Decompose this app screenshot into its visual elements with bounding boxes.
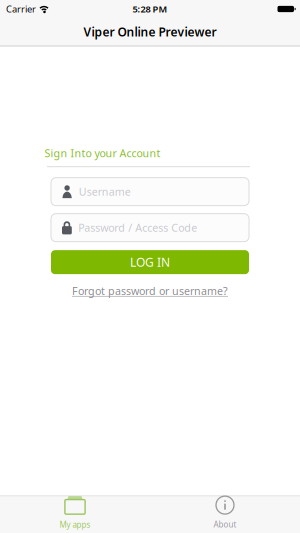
button[interactable]: My apps (0, 496, 150, 533)
button[interactable]: Username (51, 178, 249, 206)
staticText: Viper Online Previewer (83, 24, 216, 40)
staticText: Username (79, 185, 131, 199)
staticText: 5:28 PM (132, 3, 167, 15)
button[interactable]: Forgot password or username? (72, 284, 228, 298)
staticText: Sign Into your Account (44, 146, 160, 160)
staticText: Password / Access Code (78, 221, 197, 235)
staticText: Carrier (6, 3, 36, 15)
staticText: Forgot password or username? (72, 284, 228, 298)
button[interactable]: About (150, 496, 300, 533)
staticText: My apps (59, 519, 90, 530)
staticText: About (213, 519, 236, 530)
button[interactable]: Password / Access Code (51, 214, 249, 242)
staticText: LOG IN (130, 254, 170, 270)
button[interactable]: LOG IN (51, 250, 249, 274)
